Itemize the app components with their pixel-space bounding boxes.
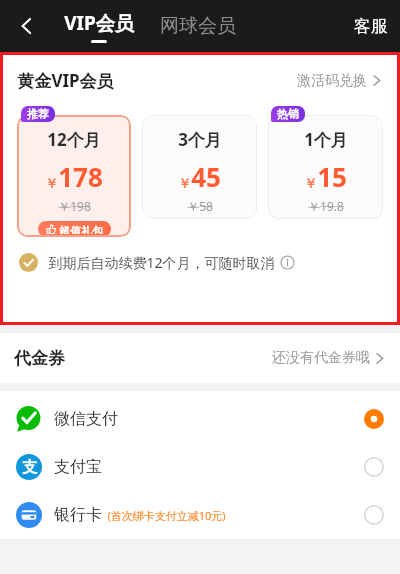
staticText: ￥ xyxy=(178,175,191,191)
staticText: 还没有代金券哦 xyxy=(272,349,370,367)
staticText: 1个月 xyxy=(304,128,348,151)
button[interactable]: 支 xyxy=(0,443,400,491)
staticText: 到期后自动续费12个月，可随时取消 xyxy=(48,253,275,272)
staticText: 45 xyxy=(191,159,221,194)
staticText: ￥198 xyxy=(58,198,91,214)
staticText: 超值礼包 xyxy=(59,224,103,234)
button[interactable]: Back xyxy=(12,11,42,41)
staticText: 支 xyxy=(22,458,37,477)
button[interactable]: 客服 xyxy=(354,16,388,37)
staticText: 黄金VIP会员 xyxy=(17,69,114,92)
button[interactable]: 12个月 xyxy=(17,115,131,237)
button[interactable]: 到期后自动续费12个月，可随时取消 xyxy=(3,253,397,272)
button[interactable]: 代金券 xyxy=(0,333,400,383)
staticText: 代金券 xyxy=(14,348,65,369)
staticText: ￥ xyxy=(45,175,58,191)
staticText: 激活码兑换 xyxy=(297,72,367,90)
button[interactable]: 1个月 xyxy=(268,115,383,219)
staticText: ￥19.8 xyxy=(308,198,344,214)
staticText: VIP会员 xyxy=(64,10,134,36)
staticText: 12个月 xyxy=(47,128,101,151)
button[interactable]: 银行卡 xyxy=(0,491,400,539)
staticText: 推荐 xyxy=(27,107,49,121)
button[interactable]: 网球会员 xyxy=(160,14,236,38)
staticText: 支付宝 xyxy=(54,457,102,477)
button[interactable]: VIP会员 xyxy=(64,10,134,43)
button[interactable]: 黄金VIP会员 xyxy=(3,69,397,92)
staticText: (首次绑卡支付立减10元) xyxy=(107,508,226,523)
staticText: 3个月 xyxy=(178,128,222,151)
staticText: 热销 xyxy=(277,107,299,121)
button[interactable]: 3个月 xyxy=(142,115,257,219)
button[interactable]: 微信支付 xyxy=(0,395,400,443)
staticText: 178 xyxy=(58,159,103,194)
staticText: 银行卡 xyxy=(54,505,102,525)
staticText: ￥58 xyxy=(187,198,213,214)
staticText: ￥ xyxy=(304,175,317,191)
staticText: 15 xyxy=(317,159,347,194)
staticText: 微信支付 xyxy=(54,409,118,429)
